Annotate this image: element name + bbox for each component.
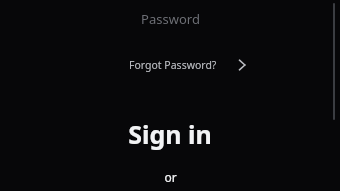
button[interactable]: Sign in (118, 115, 222, 153)
staticText: Forgot Password? (129, 58, 217, 72)
staticText: or (164, 169, 177, 185)
button[interactable]: Password (85, 6, 255, 32)
staticText: Password (141, 10, 200, 28)
button[interactable]: Forgot Password? (125, 53, 254, 77)
staticText: Sign in (128, 117, 212, 151)
other: Forgot Password (234, 57, 250, 73)
